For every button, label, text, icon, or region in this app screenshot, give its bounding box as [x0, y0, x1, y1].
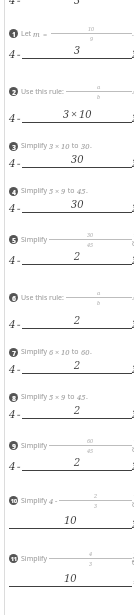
staticText: − — [17, 200, 21, 215]
staticText: 10 — [88, 25, 95, 32]
staticText: − — [17, 46, 21, 61]
staticText: − — [17, 252, 21, 267]
staticText: = — [41, 29, 50, 39]
staticText: × — [55, 141, 60, 151]
staticText: × — [55, 186, 60, 196]
staticText: . — [90, 347, 92, 357]
button[interactable]: 4 — [9, 196, 132, 218]
button[interactable]: 6 — [9, 283, 132, 312]
staticText: 4 — [9, 0, 16, 6]
button[interactable]: 4 — [9, 106, 132, 128]
staticText: 3 — [74, 42, 81, 57]
staticText: 4 — [9, 155, 16, 170]
button[interactable]: 7 — [9, 347, 132, 357]
staticText: × — [71, 106, 78, 121]
staticText: 9 — [12, 442, 16, 450]
staticText: − — [17, 361, 21, 376]
staticText: 4 — [12, 188, 16, 196]
staticText: Use this rule: — [21, 87, 66, 97]
button[interactable]: 10 — [9, 489, 132, 512]
staticText: 4 — [9, 361, 16, 376]
staticText: − — [17, 316, 21, 331]
staticText: Simplify — [21, 392, 49, 402]
staticText: − — [17, 155, 21, 170]
staticText: − — [17, 110, 21, 125]
staticText: 5 — [49, 392, 54, 402]
staticText: to — [66, 186, 77, 196]
staticText: − — [55, 496, 58, 506]
button[interactable]: 4 — [9, 312, 132, 334]
staticText: 60 — [87, 437, 94, 444]
button[interactable]: 4 — [9, 357, 132, 379]
staticText: 10 — [61, 141, 70, 151]
staticText: 4 — [9, 200, 16, 215]
staticText: 8 — [12, 394, 16, 402]
button[interactable]: 10 — [9, 570, 132, 592]
staticText: 5 — [49, 186, 54, 196]
staticText: to — [66, 392, 77, 402]
button[interactable]: 9 — [9, 437, 132, 454]
staticText: Simplify — [21, 496, 49, 506]
staticText: 6 — [12, 294, 16, 302]
button[interactable]: 1 — [9, 25, 132, 42]
staticText: 1 — [12, 30, 16, 38]
staticText: 30 — [71, 151, 84, 166]
staticText: 10 — [64, 570, 77, 585]
button[interactable]: 4 — [9, 42, 132, 64]
staticText: a — [97, 83, 101, 90]
button[interactable]: 8 — [9, 392, 132, 402]
staticText: 2 — [74, 248, 81, 263]
button[interactable]: 2 — [9, 77, 132, 106]
staticText: 2 — [74, 454, 81, 469]
staticText: − — [17, 0, 21, 6]
staticText: 3 — [94, 502, 98, 509]
staticText: 2 — [74, 402, 81, 417]
button[interactable]: 4 — [9, 454, 132, 476]
staticText: × — [55, 347, 60, 357]
button[interactable]: 5 — [9, 231, 132, 248]
staticText: 2 — [74, 357, 81, 372]
staticText: Simplify — [21, 441, 49, 451]
staticText: Simplify — [21, 235, 49, 245]
button[interactable]: 10 — [9, 512, 132, 534]
staticText: 45 — [87, 447, 94, 454]
staticText: Simplify — [21, 554, 49, 564]
button[interactable]: 11 — [9, 547, 132, 570]
staticText: 3 — [89, 560, 93, 567]
button[interactable]: 4 — [9, 186, 132, 196]
staticText: 6 — [49, 347, 54, 357]
button[interactable]: 4 — [9, 151, 132, 173]
staticText: Simplify — [21, 347, 49, 357]
staticText: 9 — [61, 392, 66, 402]
staticText: a — [97, 289, 101, 296]
button[interactable]: 4 — [9, 402, 132, 424]
staticText: . — [90, 141, 92, 151]
staticText: 45 — [77, 186, 86, 196]
button[interactable]: 3 — [9, 141, 132, 151]
staticText: 2 — [12, 88, 16, 96]
staticText: 10 — [79, 106, 92, 121]
staticText: 4 — [89, 550, 93, 557]
staticText: m — [33, 29, 40, 39]
staticText: 9 — [90, 35, 94, 42]
staticText: 4 — [9, 46, 16, 61]
staticText: 30 — [71, 196, 84, 211]
staticText: 3 — [63, 106, 70, 121]
button[interactable]: 4 — [9, 248, 132, 270]
staticText: 10 — [61, 347, 70, 357]
staticText: 9 — [61, 186, 66, 196]
staticText: to — [70, 347, 81, 357]
staticText: b — [97, 299, 101, 306]
staticText: 11 — [11, 555, 17, 562]
staticText: 2 — [74, 312, 81, 327]
